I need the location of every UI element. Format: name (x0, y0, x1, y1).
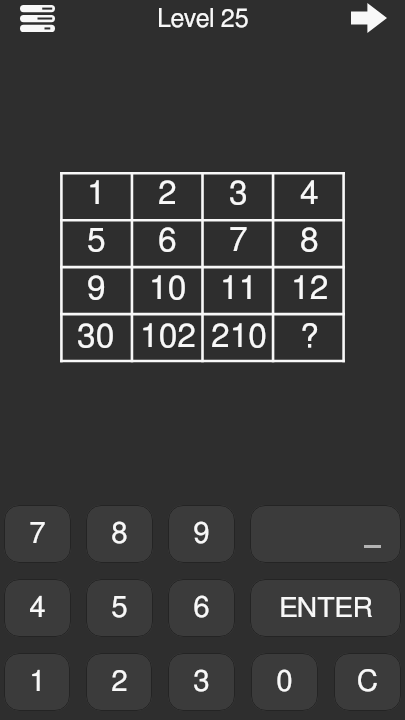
staticText: 7 (29, 519, 46, 549)
button[interactable]: 8 (86, 505, 153, 563)
staticText: 7 (229, 224, 248, 258)
staticText: 3 (229, 177, 248, 211)
staticText: 3 (193, 667, 210, 697)
button[interactable]: C (334, 653, 401, 711)
staticText: 8 (300, 224, 319, 258)
staticText: 6 (158, 224, 177, 258)
staticText: 11 (220, 272, 258, 306)
staticText: 1 (29, 667, 46, 697)
staticText: 210 (211, 320, 267, 354)
staticText: 6 (193, 593, 210, 623)
button[interactable]: 7 (4, 505, 71, 563)
staticText: 0 (276, 667, 293, 697)
button[interactable]: 5 (86, 579, 153, 637)
staticText: 4 (300, 177, 319, 211)
button[interactable]: Settings (14, 2, 60, 35)
staticText: Level 25 (157, 7, 249, 32)
staticText: 1 (87, 177, 106, 211)
staticText: 5 (111, 593, 128, 623)
staticText: 102 (140, 320, 196, 354)
staticText: 30 (77, 320, 115, 354)
staticText: 12 (291, 272, 329, 306)
button[interactable]: 6 (168, 579, 235, 637)
button[interactable]: 2 (86, 653, 152, 711)
button[interactable]: 4 (4, 579, 71, 637)
staticText: 9 (87, 272, 106, 306)
staticText: 10 (149, 272, 187, 306)
staticText: ENTER (279, 594, 373, 623)
button[interactable]: 9 (168, 505, 235, 563)
button[interactable]: 0 (251, 653, 318, 711)
staticText: ? (300, 320, 319, 354)
button[interactable]: Next level (349, 3, 389, 33)
staticText: 4 (29, 593, 46, 623)
staticText: 8 (111, 519, 128, 549)
staticText: 5 (87, 224, 106, 258)
staticText: 2 (158, 177, 177, 211)
staticText: 2 (111, 667, 128, 697)
button[interactable]: 1 (4, 653, 70, 711)
staticText: C (357, 667, 378, 697)
button[interactable]: ENTER (250, 579, 401, 637)
button[interactable]: Answer field (250, 505, 401, 563)
staticText: 9 (193, 519, 210, 549)
button[interactable]: 3 (168, 653, 235, 711)
